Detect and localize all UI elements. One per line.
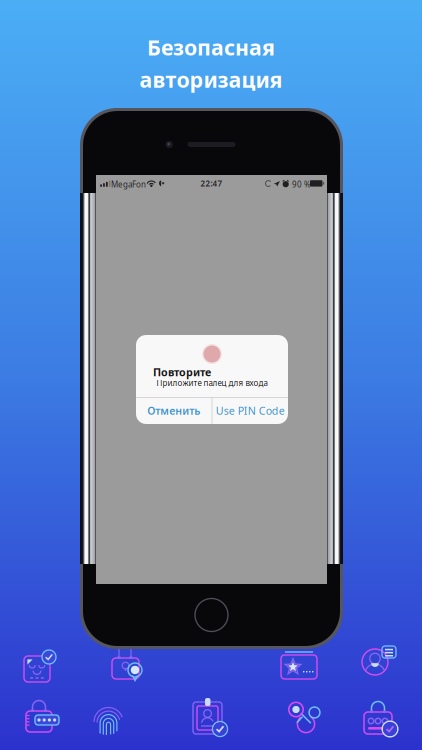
staticText: Безопасная xyxy=(147,33,275,61)
staticText: Use PIN Code xyxy=(216,403,285,418)
staticText: Отменить xyxy=(147,403,200,418)
staticText: авторизация xyxy=(139,65,282,94)
staticText: 90 % xyxy=(292,179,311,190)
staticText: 22:47 xyxy=(200,178,222,189)
button[interactable]: Use PIN Code xyxy=(212,397,288,424)
staticText: Приложите палец для входа xyxy=(156,378,267,388)
button[interactable]: Отменить xyxy=(136,397,212,424)
staticText: Повторите xyxy=(153,365,211,379)
staticText: MegaFon xyxy=(111,179,146,190)
